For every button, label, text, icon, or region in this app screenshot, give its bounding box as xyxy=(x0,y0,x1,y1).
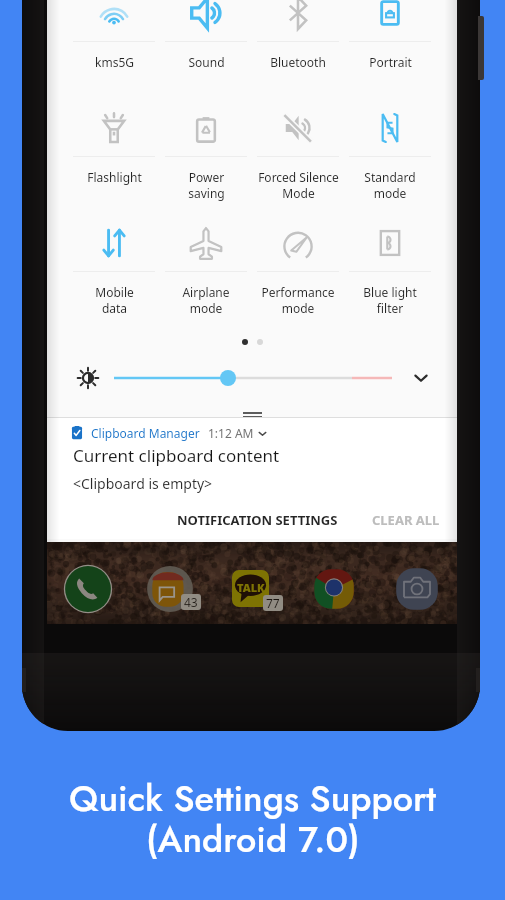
staticText: NOTIFICATION SETTINGS xyxy=(177,511,338,529)
staticText: Airplane mode xyxy=(182,284,230,316)
button[interactable]: Portrait xyxy=(344,0,436,330)
staticText: Current clipboard content xyxy=(73,444,280,467)
button[interactable]: Blue light filter xyxy=(344,0,436,330)
staticText: Forced Silence Mode xyxy=(258,169,339,201)
staticText: Mobile data xyxy=(95,284,134,316)
staticText: Standard mode xyxy=(364,169,416,201)
staticText: Power saving xyxy=(188,169,225,201)
button[interactable]: Performance mode xyxy=(252,0,344,330)
button[interactable]: Bluetooth xyxy=(252,0,344,330)
button[interactable]: CLEAR ALL xyxy=(368,507,444,533)
button[interactable]: Phone xyxy=(62,563,114,615)
staticText: Clipboard Manager xyxy=(91,425,200,441)
staticText: (Android 7.0) xyxy=(146,813,360,865)
button[interactable]: NOTIFICATION SETTINGS xyxy=(173,507,342,533)
button[interactable]: Standard mode xyxy=(344,0,436,330)
button[interactable]: Power saving xyxy=(160,0,252,330)
staticText: Sound xyxy=(188,54,225,70)
staticText: TALK xyxy=(237,580,265,595)
staticText: kms5G xyxy=(95,54,134,70)
button[interactable]: Camera xyxy=(391,563,443,615)
button[interactable]: kms5G xyxy=(68,0,160,330)
staticText: 43 xyxy=(184,594,198,610)
staticText: Flashlight xyxy=(87,169,142,185)
button[interactable]: Chrome xyxy=(308,563,360,615)
staticText: Bluetooth xyxy=(270,54,326,70)
staticText: Performance mode xyxy=(261,284,335,316)
staticText: Portrait xyxy=(369,54,412,70)
staticText: Blue light filter xyxy=(363,284,417,316)
button[interactable]: Flashlight xyxy=(68,0,160,330)
staticText: CLEAR ALL xyxy=(372,511,440,529)
button[interactable]: Forced Silence Mode xyxy=(252,0,344,330)
button[interactable]: Messages xyxy=(144,563,196,615)
staticText: 77 xyxy=(266,595,280,611)
button[interactable]: Sound xyxy=(160,0,252,330)
staticText: <Clipboard is empty> xyxy=(73,474,213,493)
staticText: Quick Settings Support xyxy=(69,772,437,824)
button[interactable]: Airplane mode xyxy=(160,0,252,330)
staticText: 1:12 AM xyxy=(208,425,254,441)
button[interactable]: Mobile data xyxy=(68,0,160,330)
button[interactable]: KakaoTalk xyxy=(226,563,278,615)
